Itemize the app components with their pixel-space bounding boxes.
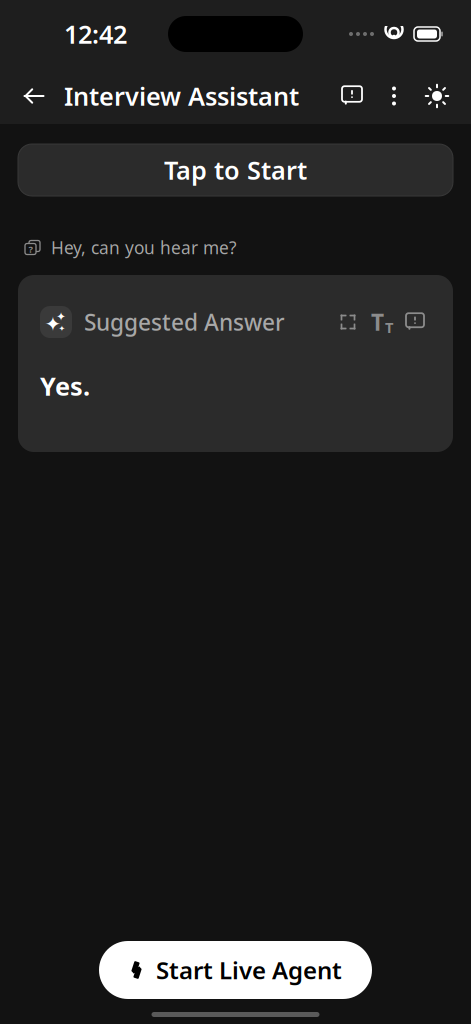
staticText: Suggested Answer bbox=[84, 307, 285, 337]
staticText: T bbox=[371, 307, 384, 337]
staticText: T bbox=[385, 318, 393, 337]
button[interactable]: Expand bbox=[331, 305, 365, 339]
staticText: 12:42 bbox=[64, 17, 127, 51]
staticText: ✦ bbox=[44, 313, 61, 335]
staticText: ✦ bbox=[56, 310, 66, 323]
button[interactable]: Report answer bbox=[399, 305, 431, 339]
button[interactable]: More options bbox=[373, 74, 415, 118]
button[interactable]: Tap to Start bbox=[18, 144, 453, 196]
staticText: ? bbox=[28, 243, 32, 255]
staticText: Yes. bbox=[40, 369, 90, 403]
button[interactable]: Back bbox=[12, 74, 56, 118]
staticText: Interview Assistant bbox=[64, 79, 299, 113]
staticText: Tap to Start bbox=[164, 153, 307, 187]
staticText: Start Live Agent bbox=[156, 954, 342, 986]
staticText: ✦ bbox=[58, 324, 65, 333]
staticText: Hey, can you hear me? bbox=[51, 236, 237, 259]
button[interactable]: Text size bbox=[365, 305, 399, 339]
button[interactable]: Start Live Agent bbox=[99, 941, 372, 999]
button[interactable]: Report an issue bbox=[331, 74, 373, 118]
button[interactable]: Brightness bbox=[415, 74, 459, 118]
